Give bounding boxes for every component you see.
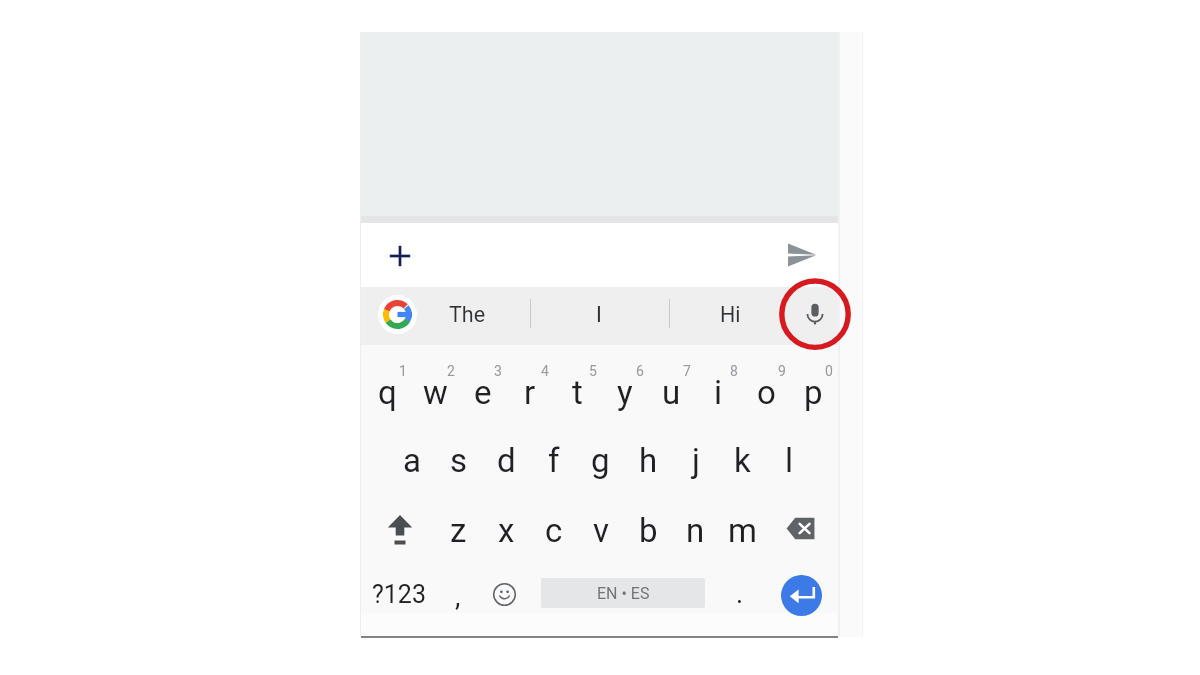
staticText: v — [593, 511, 609, 550]
button[interactable]: 1 — [394, 362, 412, 380]
button[interactable]: Send — [781, 234, 823, 276]
button[interactable]: Add attachment — [380, 236, 420, 276]
staticText: 1 — [399, 363, 407, 379]
staticText: ?123 — [372, 580, 426, 609]
button[interactable]: Google — [378, 295, 417, 334]
button[interactable]: 3 — [489, 362, 507, 380]
button[interactable]: o — [743, 358, 790, 426]
staticText: a — [403, 441, 421, 480]
staticText: 2 — [447, 363, 455, 379]
staticText: j — [692, 441, 700, 480]
button[interactable]: 0 — [820, 362, 838, 380]
staticText: 7 — [683, 363, 691, 379]
button[interactable]: p — [790, 358, 837, 426]
staticText: 0 — [825, 363, 833, 379]
staticText: The — [449, 302, 486, 327]
button[interactable]: Emoji — [482, 560, 526, 628]
button[interactable]: j — [672, 426, 719, 494]
staticText: EN • ES — [597, 584, 650, 603]
button[interactable]: s — [435, 426, 482, 494]
button[interactable]: 5 — [584, 362, 602, 380]
staticText: k — [734, 441, 751, 480]
button[interactable]: 7 — [678, 362, 696, 380]
button[interactable]: n — [672, 496, 719, 564]
button[interactable]: Enter — [781, 575, 822, 616]
button[interactable]: z — [435, 496, 482, 564]
button[interactable]: v — [577, 496, 624, 564]
staticText: 6 — [636, 363, 644, 379]
button[interactable]: Comma — [438, 563, 478, 631]
staticText: 5 — [589, 363, 597, 379]
button[interactable]: c — [530, 496, 577, 564]
staticText: 9 — [778, 363, 786, 379]
staticText: x — [498, 511, 515, 550]
staticText: 8 — [730, 363, 738, 379]
staticText: . — [736, 578, 744, 610]
staticText: l — [785, 441, 794, 480]
button[interactable]: t — [554, 358, 601, 426]
staticText: u — [662, 373, 681, 412]
staticText: z — [450, 511, 467, 550]
button[interactable]: Shift — [364, 496, 435, 564]
staticText: t — [572, 373, 583, 412]
button[interactable]: 9 — [773, 362, 791, 380]
staticText: b — [639, 511, 658, 550]
staticText: 4 — [541, 363, 549, 379]
button[interactable]: 8 — [725, 362, 743, 380]
button[interactable]: Hi — [685, 290, 775, 338]
button[interactable]: b — [625, 496, 672, 564]
button[interactable]: Period — [720, 560, 760, 628]
staticText: c — [545, 511, 563, 550]
button[interactable]: 4 — [536, 362, 554, 380]
button[interactable]: Backspace — [765, 494, 836, 562]
staticText: m — [728, 511, 757, 550]
button[interactable]: d — [483, 426, 530, 494]
staticText: I — [596, 302, 602, 327]
button[interactable]: 2 — [442, 362, 460, 380]
staticText: , — [455, 581, 461, 613]
staticText: d — [497, 441, 516, 480]
button[interactable]: w — [412, 358, 459, 426]
staticText: y — [617, 373, 633, 412]
staticText: f — [548, 441, 560, 480]
staticText: Hi — [720, 302, 741, 327]
button[interactable]: x — [483, 496, 530, 564]
button[interactable]: Symbols — [368, 560, 430, 628]
button[interactable]: r — [506, 358, 553, 426]
staticText: o — [757, 373, 776, 412]
button[interactable]: g — [577, 426, 624, 494]
button[interactable]: f — [530, 426, 577, 494]
button[interactable]: l — [766, 426, 813, 494]
staticText: p — [804, 373, 823, 412]
button[interactable]: 6 — [631, 362, 649, 380]
staticText: q — [378, 373, 397, 412]
button[interactable]: i — [695, 358, 742, 426]
button[interactable]: m — [719, 496, 766, 564]
button[interactable]: a — [388, 426, 435, 494]
button[interactable]: e — [459, 358, 506, 426]
button[interactable]: k — [719, 426, 766, 494]
button[interactable]: I — [554, 290, 644, 338]
button[interactable]: The — [422, 290, 512, 338]
staticText: s — [450, 441, 468, 480]
button[interactable]: y — [601, 358, 648, 426]
staticText: w — [423, 373, 448, 412]
staticText: g — [591, 441, 610, 480]
staticText: n — [686, 511, 705, 550]
staticText: r — [524, 373, 536, 412]
button[interactable]: q — [364, 358, 411, 426]
staticText: i — [714, 373, 723, 412]
button[interactable]: h — [625, 426, 672, 494]
staticText: h — [639, 441, 658, 480]
button[interactable]: u — [648, 358, 695, 426]
button[interactable]: Space — [541, 578, 705, 608]
button[interactable]: Voice input — [791, 290, 839, 338]
staticText: e — [474, 373, 492, 412]
staticText: 3 — [494, 363, 502, 379]
